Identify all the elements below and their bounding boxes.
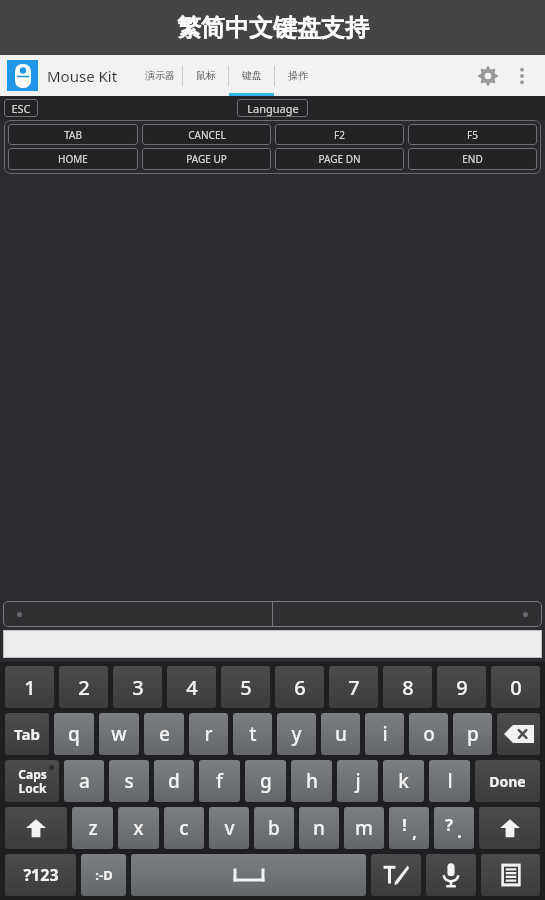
button[interactable]: k: [383, 760, 424, 802]
button[interactable]: !: [389, 807, 429, 849]
button[interactable]: ESC: [4, 99, 38, 117]
button[interactable]: b: [254, 807, 294, 849]
button[interactable]: 8: [383, 666, 432, 708]
button[interactable]: m: [344, 807, 384, 849]
staticText: r: [204, 721, 213, 747]
staticText: j: [355, 768, 361, 794]
button[interactable]: Backspace: [497, 713, 540, 755]
button[interactable]: HOME: [8, 148, 138, 170]
button[interactable]: F5: [408, 124, 537, 145]
staticText: 键盘: [242, 69, 262, 82]
button[interactable]: 鼠标: [183, 55, 228, 96]
button[interactable]: 2: [59, 666, 108, 708]
button[interactable]: f: [199, 760, 240, 802]
button[interactable]: r: [189, 713, 228, 755]
staticText: TAB: [64, 128, 82, 142]
staticText: Mouse Kit: [47, 66, 118, 86]
staticText: u: [335, 721, 347, 747]
button[interactable]: PAGE DN: [275, 148, 404, 170]
button[interactable]: z: [72, 807, 113, 849]
staticText: 0: [510, 674, 522, 701]
button[interactable]: Space: [131, 854, 366, 896]
button[interactable]: [3, 630, 542, 658]
button[interactable]: s: [109, 760, 149, 802]
button[interactable]: 7: [329, 666, 378, 708]
staticText: Language: [247, 101, 299, 116]
button[interactable]: :-D: [81, 854, 126, 896]
button[interactable]: 键盘: [229, 55, 274, 96]
staticText: HOME: [58, 152, 88, 166]
button[interactable]: w: [99, 713, 139, 755]
staticText: F5: [467, 128, 478, 142]
staticText: q: [68, 721, 80, 747]
staticText: 3: [132, 674, 144, 701]
staticText: l: [447, 768, 453, 794]
staticText: g: [260, 768, 272, 794]
button[interactable]: Clipboard: [481, 854, 540, 896]
staticText: 2: [78, 674, 90, 701]
button[interactable]: END: [408, 148, 537, 170]
button[interactable]: Tab: [5, 713, 49, 755]
staticText: y: [291, 721, 302, 747]
button[interactable]: l: [429, 760, 470, 802]
staticText: ?123: [23, 864, 59, 886]
button[interactable]: n: [299, 807, 339, 849]
button[interactable]: u: [321, 713, 360, 755]
button[interactable]: 1: [5, 666, 54, 708]
button[interactable]: c: [164, 807, 204, 849]
button[interactable]: x: [118, 807, 159, 849]
button[interactable]: F2: [275, 124, 404, 145]
button[interactable]: 9: [437, 666, 486, 708]
button[interactable]: a: [64, 760, 104, 802]
button[interactable]: d: [154, 760, 194, 802]
staticText: 4: [186, 674, 198, 701]
button[interactable]: ?123: [5, 854, 76, 896]
staticText: 7: [348, 674, 360, 701]
button[interactable]: Voice input: [426, 854, 476, 896]
button[interactable]: j: [337, 760, 378, 802]
button[interactable]: Settings: [469, 57, 507, 95]
staticText: w: [111, 721, 127, 747]
button[interactable]: TAB: [8, 124, 138, 145]
button[interactable]: t: [233, 713, 272, 755]
staticText: ?: [445, 814, 453, 836]
button[interactable]: 0: [491, 666, 540, 708]
button[interactable]: h: [291, 760, 332, 802]
button[interactable]: [3, 601, 542, 627]
button[interactable]: 演示器: [137, 55, 182, 96]
button[interactable]: 3: [113, 666, 162, 708]
button[interactable]: CANCEL: [142, 124, 271, 145]
button[interactable]: Done: [475, 760, 540, 802]
staticText: F2: [334, 128, 345, 142]
staticText: p: [467, 721, 479, 747]
button[interactable]: p: [453, 713, 492, 755]
button[interactable]: i: [365, 713, 404, 755]
button[interactable]: y: [277, 713, 316, 755]
staticText: b: [268, 815, 280, 841]
staticText: CANCEL: [188, 128, 226, 142]
button[interactable]: ?: [434, 807, 474, 849]
button[interactable]: 6: [275, 666, 324, 708]
button[interactable]: 5: [221, 666, 270, 708]
button[interactable]: o: [409, 713, 448, 755]
button[interactable]: g: [245, 760, 286, 802]
button[interactable]: v: [209, 807, 249, 849]
button[interactable]: 4: [167, 666, 216, 708]
button[interactable]: More options: [507, 57, 537, 95]
staticText: s: [124, 768, 134, 794]
staticText: PAGE UP: [186, 152, 227, 166]
staticText: v: [224, 815, 235, 841]
button[interactable]: Shift: [479, 807, 540, 849]
button[interactable]: Handwriting: [371, 854, 421, 896]
button[interactable]: q: [54, 713, 94, 755]
button[interactable]: Caps Lock: [5, 760, 59, 802]
button[interactable]: Language: [237, 99, 308, 117]
staticText: ,: [412, 821, 417, 843]
staticText: d: [168, 768, 180, 794]
button[interactable]: PAGE UP: [142, 148, 271, 170]
button[interactable]: e: [144, 713, 184, 755]
button[interactable]: 操作: [275, 55, 320, 96]
staticText: i: [382, 721, 388, 747]
button[interactable]: Shift: [5, 807, 67, 849]
